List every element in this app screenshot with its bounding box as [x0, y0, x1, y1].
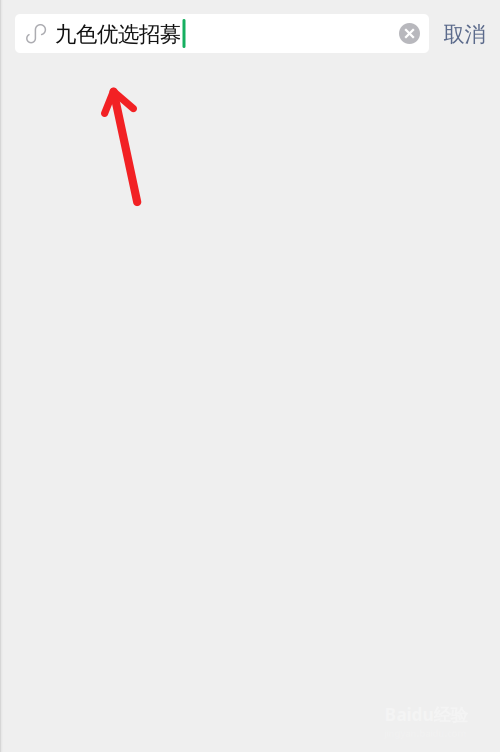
button[interactable]: 取消 [429, 14, 500, 53]
button[interactable]: Clear search text [390, 14, 429, 52]
staticText: 取消 [443, 21, 485, 48]
staticText: 九色优选招募 [55, 21, 181, 48]
